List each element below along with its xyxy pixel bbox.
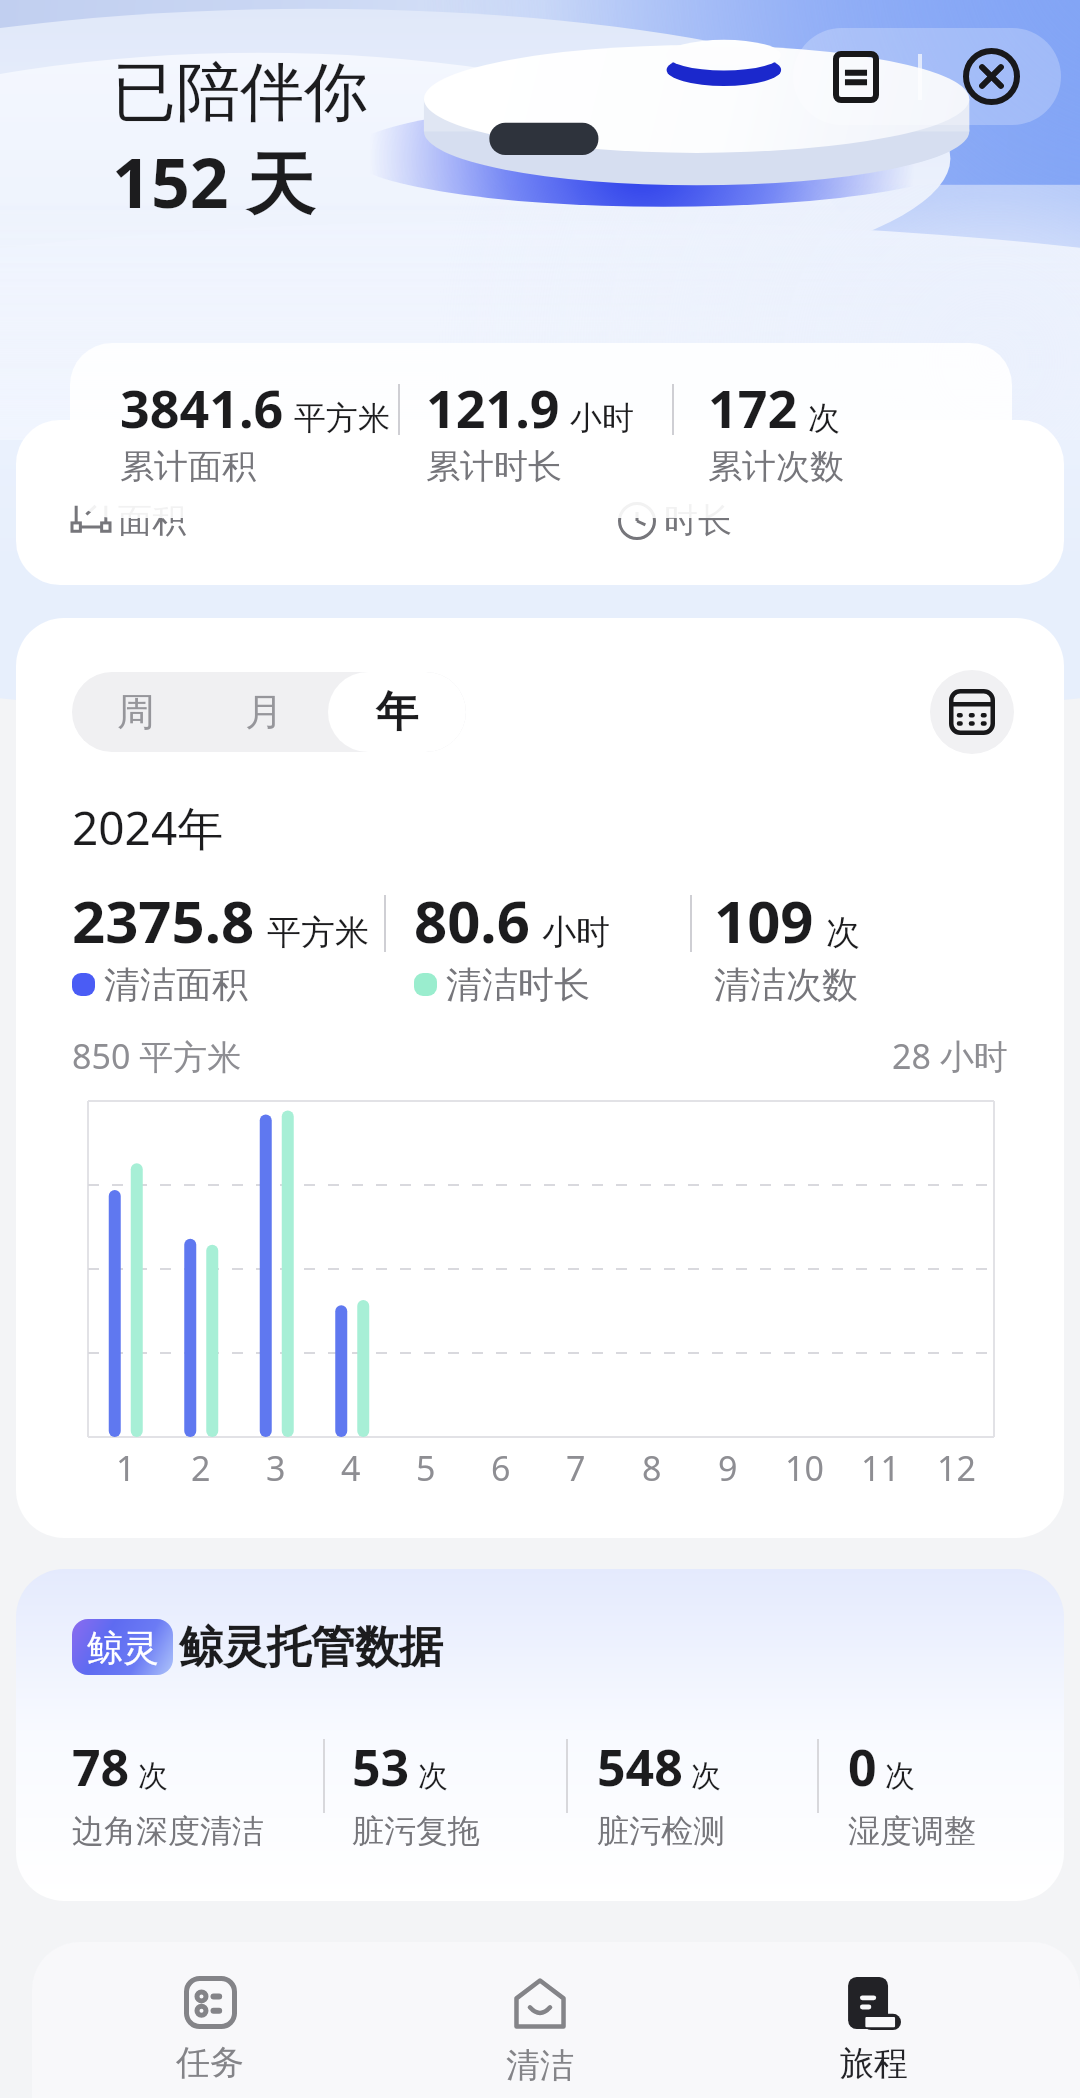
staticText: 53 — [352, 1733, 410, 1801]
staticText: 121.9 — [426, 372, 560, 443]
button[interactable]: Close — [922, 28, 1061, 125]
staticText: 累计面积 — [120, 445, 256, 488]
staticText: 12 — [937, 1445, 976, 1491]
staticText: 脏污复拖 — [352, 1811, 480, 1851]
staticText: 5 — [416, 1445, 436, 1491]
button[interactable]: 清洁 — [420, 1942, 660, 2098]
staticText: 脏污检测 — [597, 1811, 725, 1851]
staticText: 152 天 — [112, 135, 315, 228]
staticText: 累计次数 — [708, 445, 844, 488]
staticText: 平方米 — [294, 398, 390, 438]
staticText: 小时 — [542, 911, 610, 954]
staticText: 850 平方米 — [72, 1033, 242, 1079]
staticText: 旅程 — [840, 2042, 908, 2085]
staticText: 3 — [266, 1445, 286, 1491]
staticText: 8 — [642, 1445, 662, 1491]
staticText: 年 — [376, 686, 418, 739]
staticText: 小时 — [570, 398, 634, 438]
staticText: 7 — [566, 1445, 586, 1491]
button[interactable]: Calendar — [930, 670, 1014, 754]
staticText: 4 — [341, 1445, 361, 1491]
staticText: 次 — [691, 1757, 721, 1795]
staticText: 次 — [138, 1757, 168, 1795]
staticText: 鲸灵托管数据 — [179, 1620, 443, 1675]
staticText: 清洁 — [506, 2044, 574, 2087]
button[interactable]: 旅程 — [754, 1942, 994, 2098]
staticText: 548 — [597, 1733, 683, 1801]
staticText: 次 — [885, 1757, 915, 1795]
staticText: 周 — [117, 688, 155, 736]
staticText: 边角深度清洁 — [72, 1811, 264, 1851]
staticText: 累计时长 — [426, 445, 562, 488]
staticText: 平方米 — [267, 911, 369, 954]
staticText: 鲸灵 — [87, 1625, 159, 1670]
button[interactable]: 周 — [72, 672, 200, 752]
button[interactable]: Report — [793, 28, 918, 125]
staticText: 78 — [72, 1733, 130, 1801]
button[interactable]: 月 — [200, 672, 328, 752]
staticText: 0 — [848, 1733, 877, 1801]
staticText: 172 — [708, 372, 798, 443]
staticText: 28 小时 — [892, 1033, 1008, 1079]
staticText: 11 — [861, 1445, 900, 1491]
staticText: 清洁时长 — [446, 962, 590, 1007]
staticText: 次 — [808, 398, 840, 438]
staticText: 时长 — [664, 499, 732, 542]
button[interactable]: 3841.6 — [70, 343, 1012, 518]
staticText: 湿度调整 — [848, 1811, 976, 1851]
button[interactable]: 年 — [328, 672, 466, 752]
staticText: 面积 — [118, 499, 186, 542]
staticText: 80.6 — [414, 881, 530, 960]
button[interactable]: 任务 — [90, 1942, 330, 2098]
staticText: 月 — [245, 688, 283, 736]
staticText: 2 — [191, 1445, 211, 1491]
staticText: 次 — [418, 1757, 448, 1795]
staticText: 清洁面积 — [104, 962, 248, 1007]
staticText: 9 — [718, 1445, 738, 1491]
staticText: 2024年 — [72, 796, 224, 859]
staticText: 次 — [826, 911, 860, 954]
staticText: 10 — [785, 1445, 824, 1491]
staticText: 已陪伴你 — [112, 52, 368, 133]
staticText: 2375.8 — [72, 881, 255, 960]
staticText: 任务 — [176, 2041, 244, 2084]
staticText: 清洁次数 — [714, 962, 858, 1007]
staticText: 3841.6 — [120, 372, 284, 443]
staticText: 1 — [116, 1445, 136, 1491]
staticText: 6 — [491, 1445, 511, 1491]
staticText: 109 — [714, 881, 814, 960]
